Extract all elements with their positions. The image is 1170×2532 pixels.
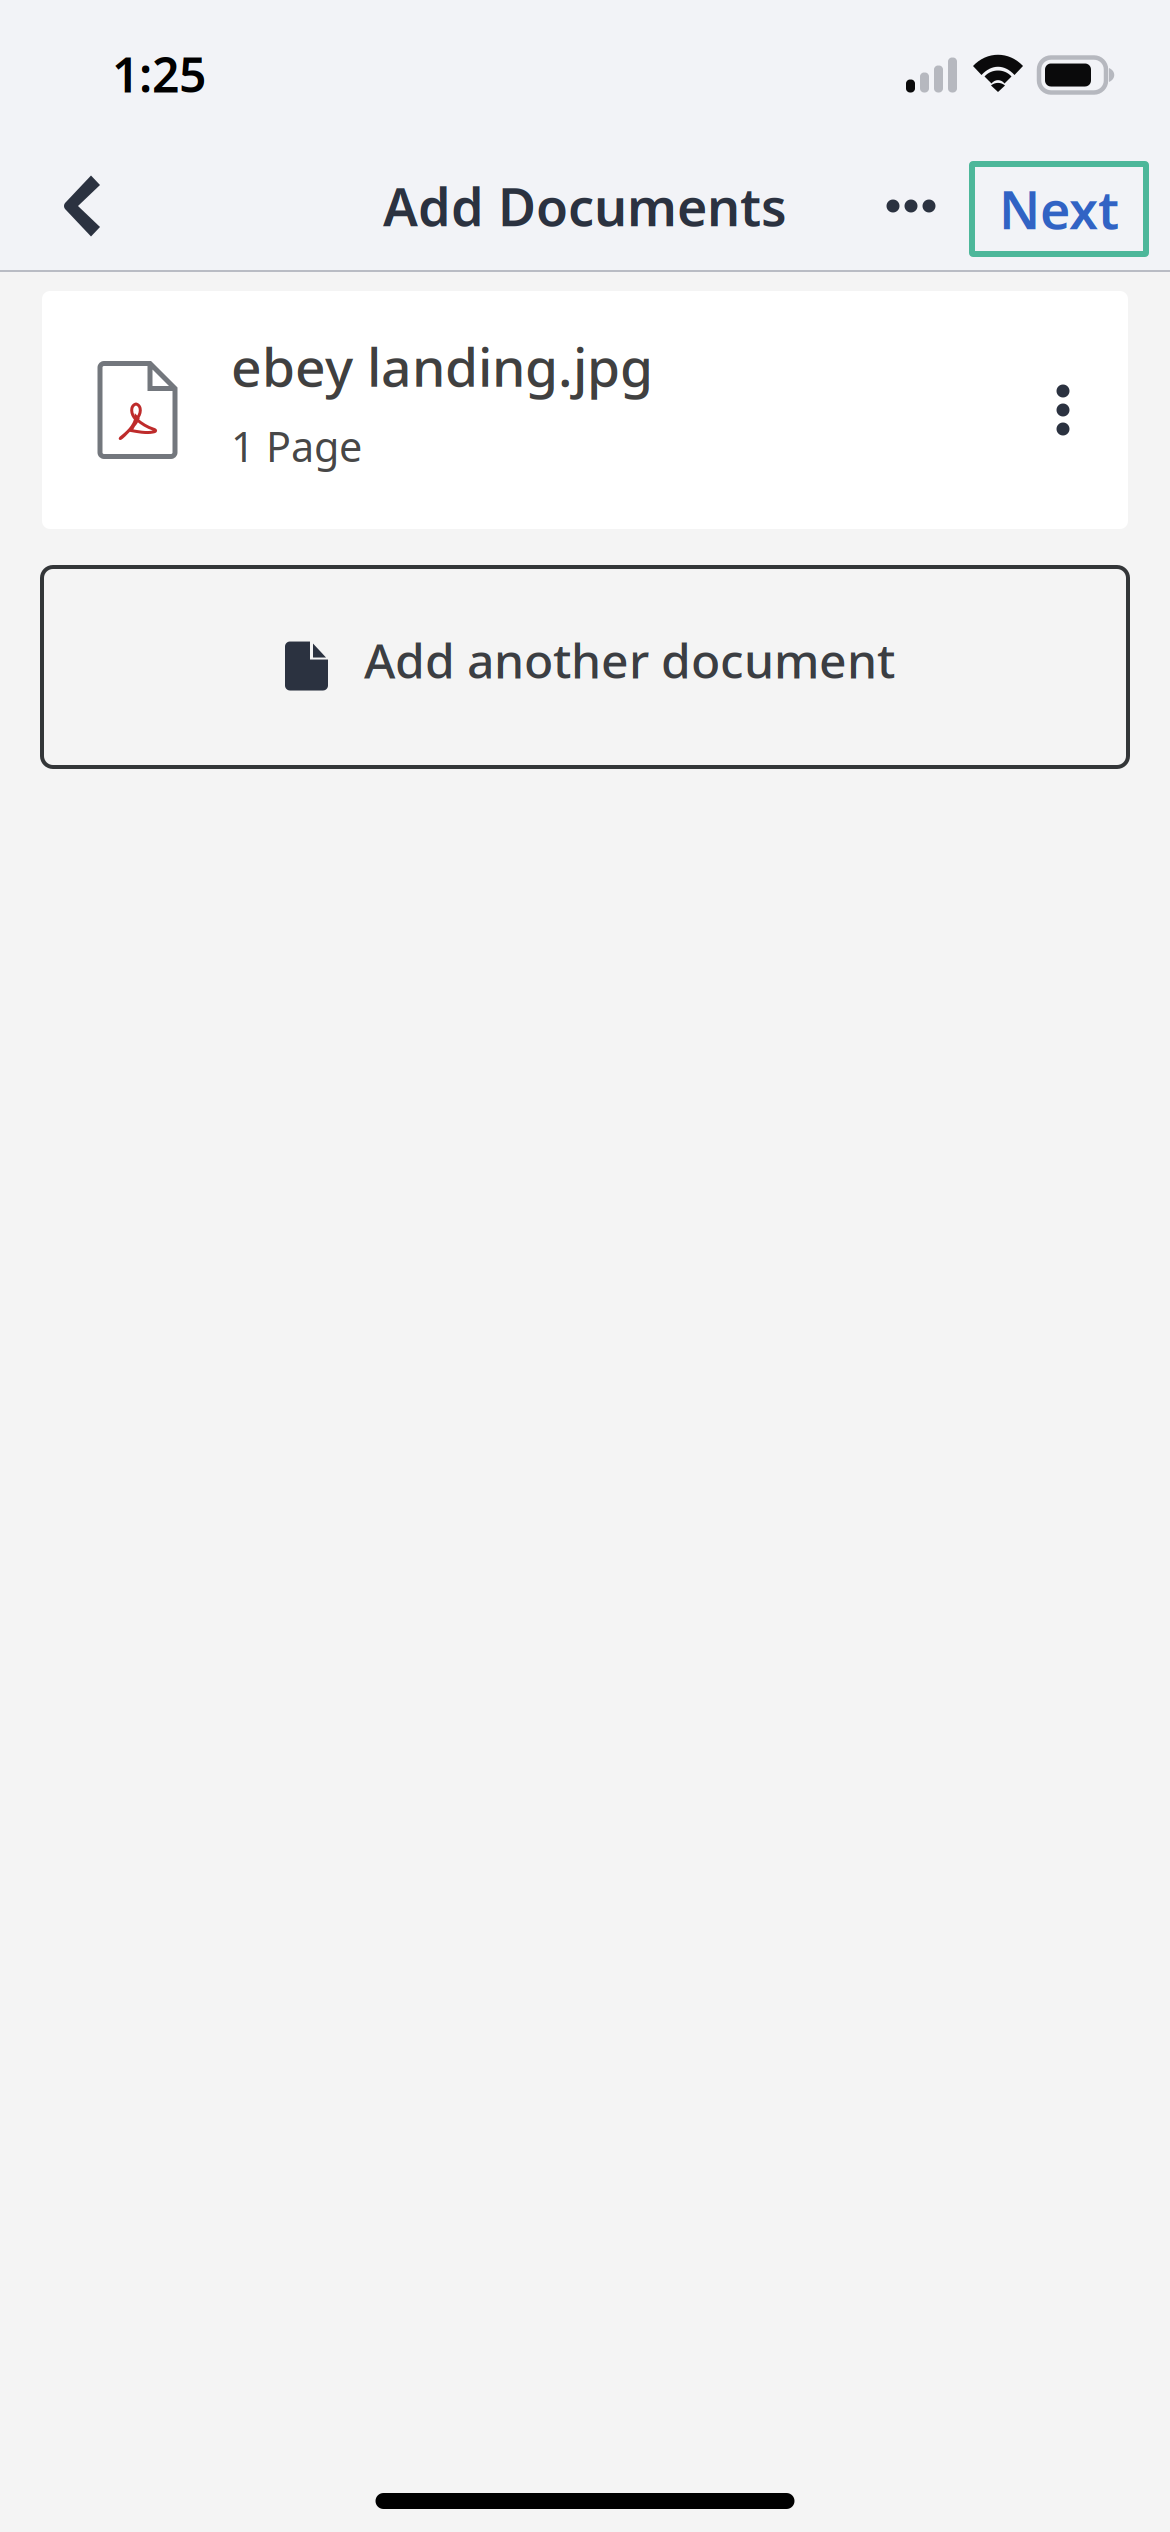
staticText: 1 Page [231, 418, 362, 473]
button[interactable]: More options [876, 151, 972, 261]
staticText: Add Documents [383, 171, 787, 241]
button[interactable]: ebey landing.jpg [42, 291, 1128, 529]
staticText: 1:25 [112, 42, 206, 106]
staticText: Add another document [364, 628, 895, 692]
button[interactable]: Back [0, 151, 100, 261]
button[interactable]: Next [972, 161, 1146, 251]
staticText: Next [999, 174, 1119, 244]
button[interactable]: Add another document [42, 567, 1128, 767]
button[interactable]: Document options [1018, 345, 1128, 475]
staticText: ebey landing.jpg [231, 331, 653, 401]
